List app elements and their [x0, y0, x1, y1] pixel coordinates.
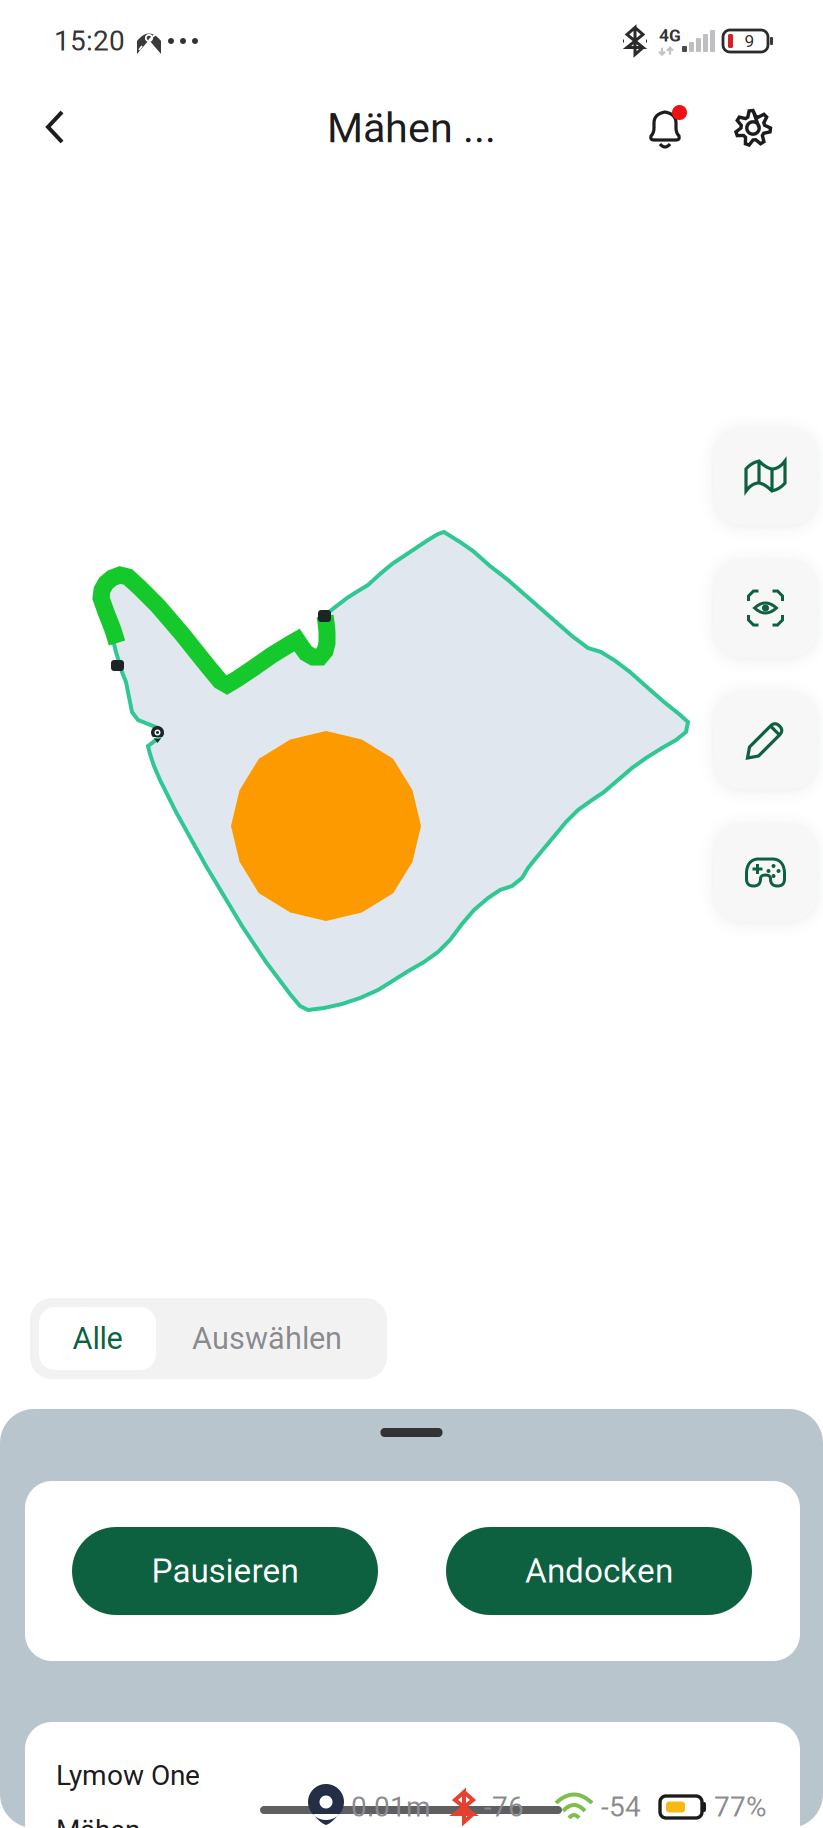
staticText: 4G	[659, 25, 681, 46]
button[interactable]: Zurück	[30, 97, 82, 159]
staticText: 9	[744, 31, 754, 51]
staticText: 15:20	[54, 25, 125, 57]
staticText: Andocken	[525, 1551, 673, 1591]
staticText: Auswählen	[192, 1320, 342, 1356]
staticText: Mähen ...	[327, 104, 496, 152]
button[interactable]: Auswählen	[156, 1307, 378, 1370]
button[interactable]: Ansicht	[714, 559, 817, 657]
staticText: Pausieren	[151, 1551, 298, 1591]
staticText: Alle	[72, 1320, 122, 1356]
button[interactable]: Steuerung	[714, 823, 817, 921]
staticText: Lymow One	[56, 1759, 200, 1792]
button[interactable]: Pausieren	[72, 1527, 378, 1615]
button[interactable]: Alle	[39, 1307, 156, 1370]
button[interactable]: Bearbeiten	[714, 691, 817, 789]
staticText: -54	[601, 1791, 641, 1823]
button[interactable]: Benachrichtigungen	[643, 97, 695, 159]
staticText: Mähen	[56, 1814, 140, 1828]
button[interactable]: Einstellungen	[729, 97, 777, 159]
button[interactable]: Karte	[714, 427, 817, 525]
staticText: 0.01m	[351, 1791, 431, 1823]
staticText: 77%	[714, 1791, 767, 1823]
button[interactable]: Andocken	[446, 1527, 752, 1615]
staticText: -76	[484, 1791, 524, 1823]
